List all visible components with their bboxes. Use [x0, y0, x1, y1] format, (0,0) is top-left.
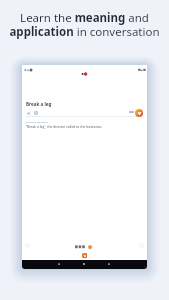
staticText: “Break a leg”, the director called to th… — [26, 124, 102, 128]
button[interactable]: Favourite — [135, 109, 143, 117]
staticText: Learn the meaning and application in con… — [9, 10, 160, 40]
button[interactable]: Listen — [34, 111, 38, 115]
staticText: ENGLISH MEANING — [26, 120, 48, 123]
button[interactable]: Share — [26, 111, 30, 115]
other: App logo — [81, 72, 88, 76]
staticText: Break a leg — [26, 101, 52, 107]
